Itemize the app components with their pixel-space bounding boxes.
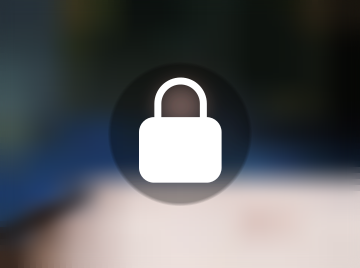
button[interactable]: Locked content bbox=[0, 0, 360, 268]
